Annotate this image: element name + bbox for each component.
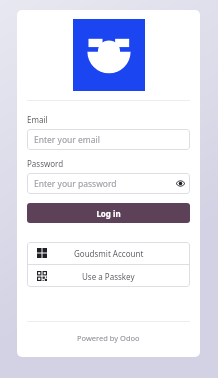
- staticText: Powered by Odoo: [77, 333, 140, 343]
- button[interactable]: Enter your password: [27, 173, 170, 194]
- staticText: Enter your email: [34, 134, 100, 146]
- staticText: Enter your password: [34, 178, 117, 190]
- button[interactable]: Enter your email: [27, 129, 190, 150]
- button[interactable]: Goudsmit Account: [27, 242, 190, 264]
- staticText: Email: [27, 114, 48, 125]
- staticText: Log in: [96, 208, 121, 219]
- button[interactable]: Log in: [27, 203, 190, 223]
- staticText: Use a Passkey: [82, 271, 135, 282]
- staticText: Goudsmit Account: [74, 248, 144, 259]
- button[interactable]: Use a Passkey: [27, 265, 190, 287]
- button[interactable]: Show password: [170, 173, 190, 194]
- staticText: Password: [27, 158, 64, 169]
